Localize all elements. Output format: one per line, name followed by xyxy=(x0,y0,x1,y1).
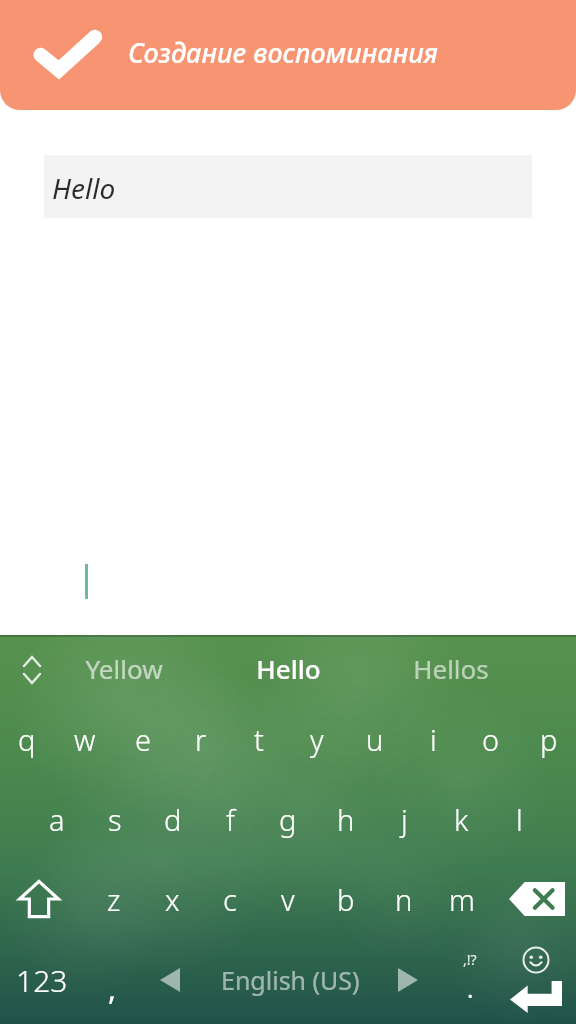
staticText: . xyxy=(467,972,474,1005)
button[interactable]: e xyxy=(117,704,169,774)
staticText: Hello xyxy=(256,651,321,686)
staticText: l xyxy=(516,800,523,839)
staticText: , xyxy=(108,968,117,1009)
button[interactable]: a xyxy=(31,784,83,854)
button[interactable]: k xyxy=(435,784,487,854)
staticText: o xyxy=(482,720,500,759)
staticText: w xyxy=(74,720,96,759)
button[interactable]: v xyxy=(262,864,314,934)
button[interactable]: Backspace xyxy=(505,869,569,929)
button[interactable]: Hellos xyxy=(361,640,541,696)
staticText: z xyxy=(107,880,121,919)
button[interactable]: m xyxy=(436,864,488,934)
button[interactable]: Emoji xyxy=(508,938,564,982)
staticText: Hellos xyxy=(413,651,489,686)
button[interactable]: Expand suggestions xyxy=(10,648,54,692)
button[interactable]: d xyxy=(147,784,199,854)
button[interactable]: c xyxy=(204,864,256,934)
staticText: f xyxy=(226,800,235,839)
button[interactable]: j xyxy=(378,784,430,854)
button[interactable]: Save memory xyxy=(26,24,108,86)
button[interactable]: t xyxy=(233,704,285,774)
button[interactable]: q xyxy=(1,704,53,774)
staticText: n xyxy=(395,880,413,919)
staticText: p xyxy=(540,720,558,759)
button[interactable]: x xyxy=(146,864,198,934)
staticText: Yellow xyxy=(85,651,163,686)
staticText: r xyxy=(195,720,207,759)
staticText: c xyxy=(223,880,237,919)
staticText: 123 xyxy=(16,960,68,1001)
staticText: v xyxy=(281,880,295,919)
button[interactable]: Space, English (US) xyxy=(140,946,440,1014)
staticText: m xyxy=(449,880,475,919)
staticText: t xyxy=(254,720,264,759)
button[interactable]: b xyxy=(320,864,372,934)
staticText: d xyxy=(164,800,182,839)
staticText: s xyxy=(108,800,122,839)
button[interactable]: Yellow xyxy=(34,640,214,696)
button[interactable]: i xyxy=(407,704,459,774)
button[interactable]: g xyxy=(262,784,314,854)
staticText: ,!? xyxy=(463,950,477,969)
staticText: i xyxy=(430,720,437,759)
staticText: k xyxy=(454,800,469,839)
staticText: u xyxy=(366,720,384,759)
button[interactable]: z xyxy=(88,864,140,934)
button[interactable]: f xyxy=(204,784,256,854)
button[interactable]: l xyxy=(493,784,545,854)
button[interactable]: y xyxy=(291,704,343,774)
staticText: Создание воспоминания xyxy=(128,34,438,71)
button[interactable]: o xyxy=(465,704,517,774)
button[interactable]: p xyxy=(523,704,575,774)
staticText: a xyxy=(49,800,65,839)
staticText: q xyxy=(18,720,36,759)
button[interactable]: n xyxy=(378,864,430,934)
button[interactable]: u xyxy=(349,704,401,774)
button[interactable]: Shift xyxy=(10,867,68,931)
button[interactable]: 123 xyxy=(0,946,84,1014)
button[interactable]: h xyxy=(320,784,372,854)
button[interactable]: s xyxy=(89,784,141,854)
staticText: b xyxy=(337,880,355,919)
button[interactable]: Hello xyxy=(44,155,532,218)
staticText: j xyxy=(401,800,408,839)
button[interactable]: Period xyxy=(440,946,504,1014)
button[interactable]: Enter xyxy=(500,972,572,1022)
staticText: h xyxy=(337,800,355,839)
staticText: g xyxy=(279,800,297,839)
staticText: y xyxy=(310,720,324,759)
button[interactable]: r xyxy=(175,704,227,774)
staticText: Hello xyxy=(52,169,116,207)
staticText: x xyxy=(165,880,180,919)
button[interactable]: , xyxy=(84,946,140,1014)
button[interactable]: Hello xyxy=(198,640,378,696)
staticText: English (US) xyxy=(221,963,360,997)
button[interactable]: w xyxy=(59,704,111,774)
staticText: e xyxy=(135,720,152,759)
